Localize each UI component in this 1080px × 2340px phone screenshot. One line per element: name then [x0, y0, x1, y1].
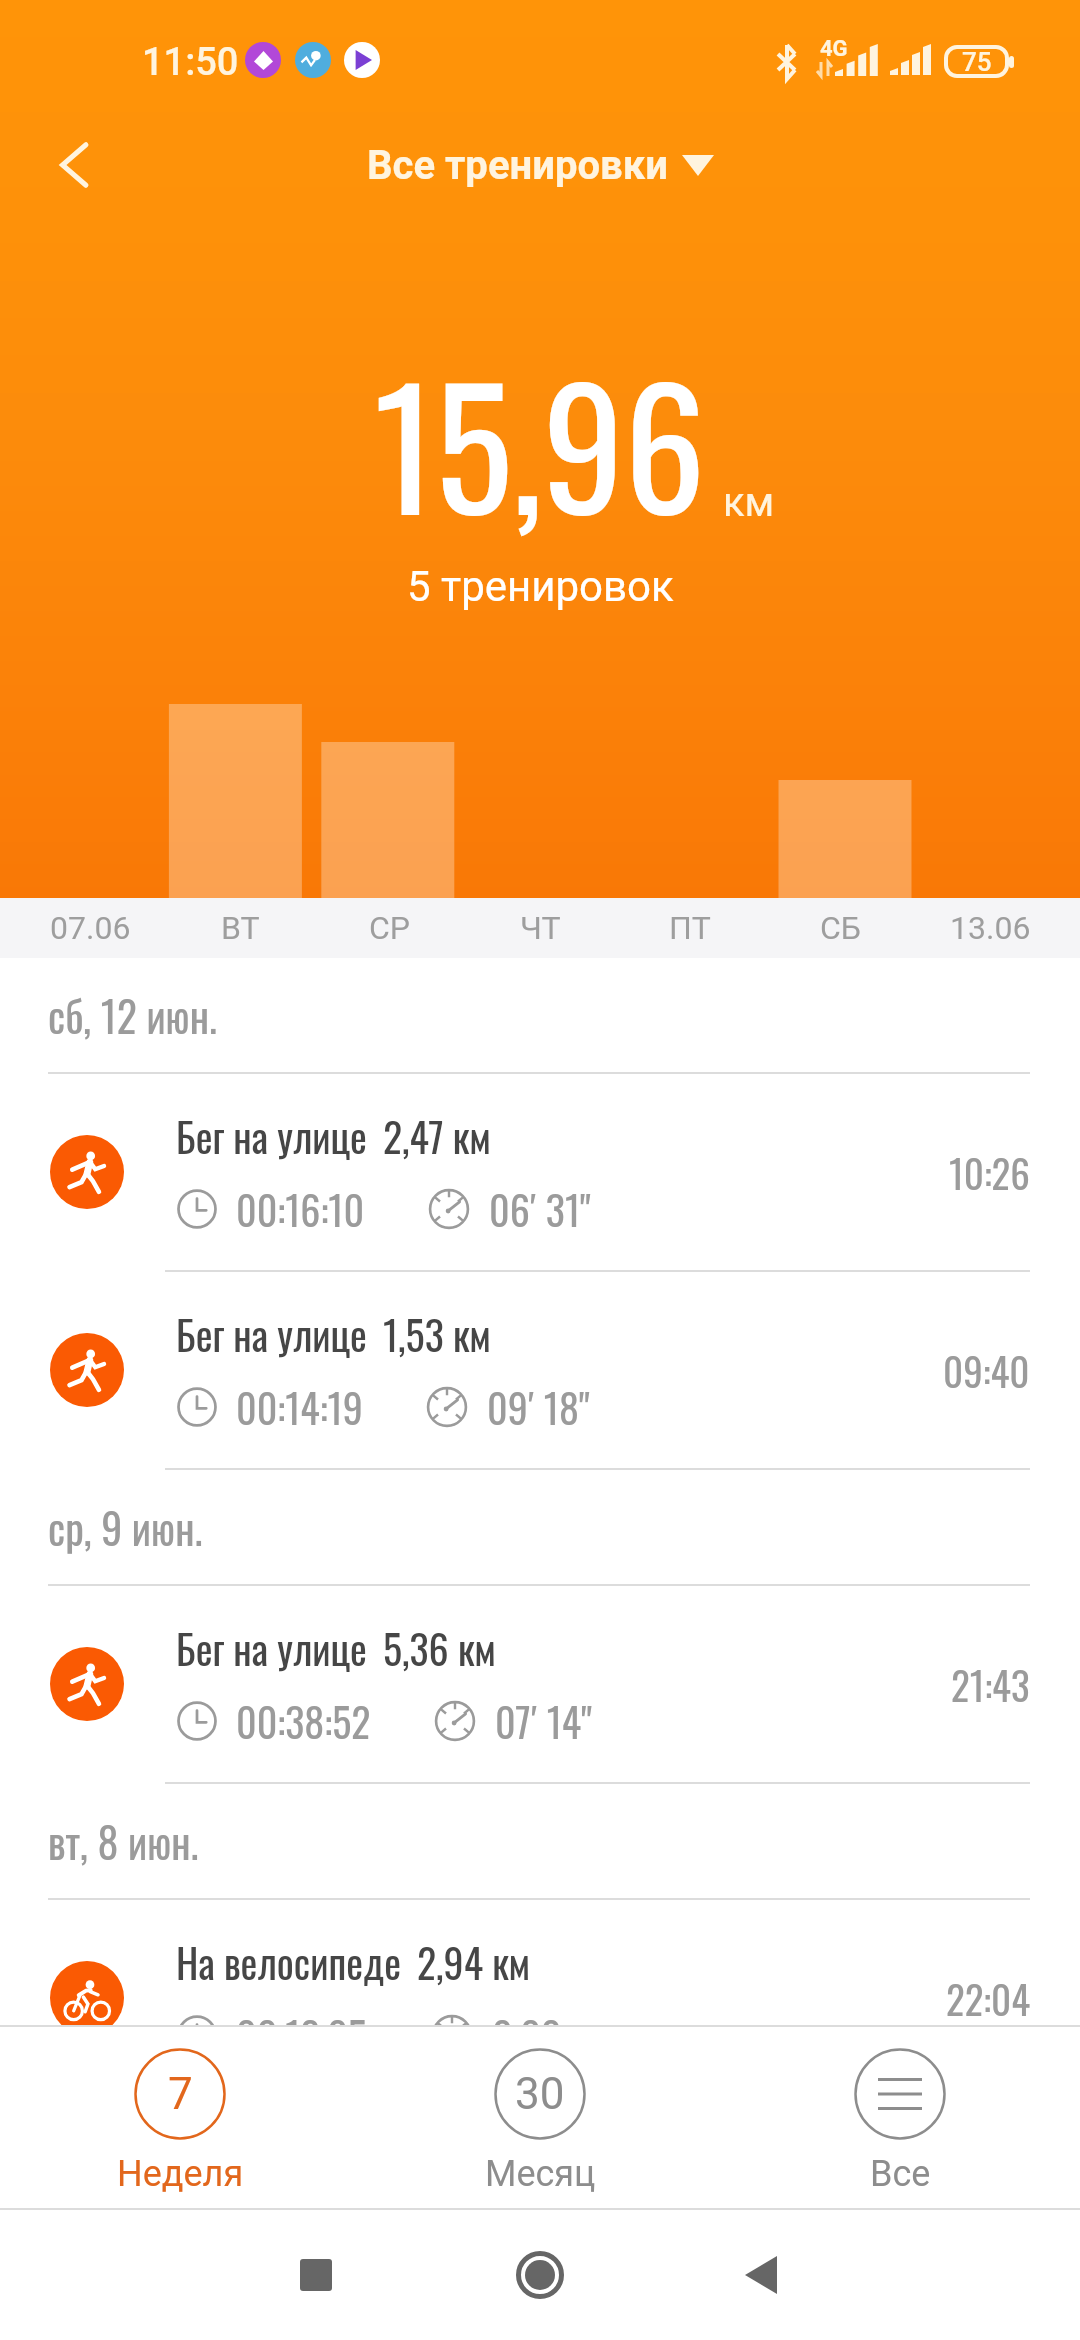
staticText: 2,94 км	[417, 1932, 530, 1991]
staticText: 0,00	[492, 2005, 562, 2064]
staticText: Бег на улице	[176, 1304, 367, 1363]
staticText: 13.06	[950, 909, 1031, 947]
staticText: Бег на улице	[176, 1106, 367, 1165]
button[interactable]: Бег на улице	[0, 1586, 1080, 1784]
staticText: км	[723, 479, 775, 526]
staticText: Все тренировки	[367, 142, 668, 189]
staticText: Бег на улице	[176, 1618, 367, 1677]
button[interactable]: 7	[0, 2027, 360, 2208]
staticText: ЧТ	[520, 909, 561, 947]
staticText: На велосипеде	[176, 1932, 401, 1991]
staticText: вт, 8 июн.	[48, 1810, 199, 1872]
button[interactable]: Бег на улице	[0, 1074, 1080, 1272]
staticText: 2,47 км	[383, 1106, 491, 1165]
staticText: 22:04	[946, 1969, 1030, 2027]
staticText: 09:40	[943, 1341, 1030, 1399]
staticText: ПТ	[669, 909, 711, 947]
staticText: 5,36 км	[383, 1618, 496, 1677]
staticText: Все	[870, 2153, 931, 2195]
staticText: 09′ 18"	[487, 1377, 590, 1436]
staticText: 00:12:05	[236, 2005, 368, 2064]
staticText: 00:14:19	[236, 1377, 363, 1436]
button[interactable]: Back	[34, 125, 114, 205]
staticText: 30	[515, 2068, 565, 2120]
staticText: 7	[168, 2068, 193, 2120]
button[interactable]: Все тренировки	[359, 136, 722, 195]
staticText: СР	[369, 909, 411, 947]
staticText: 21:43	[951, 1655, 1030, 1713]
button[interactable]: На велосипеде	[0, 1900, 1080, 2098]
staticText: 00:16:10	[236, 1179, 365, 1238]
staticText: 4G	[820, 36, 848, 62]
staticText: 07′ 14"	[495, 1691, 592, 1750]
staticText: СБ	[820, 909, 861, 947]
staticText: 00:38:52	[236, 1691, 371, 1750]
staticText: 11:50	[142, 40, 239, 85]
staticText: 1,53 км	[383, 1304, 491, 1363]
button[interactable]: 30	[360, 2027, 720, 2208]
staticText: ср, 9 июн.	[48, 1496, 203, 1558]
staticText: 06′ 31"	[489, 1179, 591, 1238]
staticText: 75	[962, 47, 992, 76]
staticText: 5 тренировок	[407, 562, 674, 611]
staticText: Неделя	[117, 2153, 244, 2195]
staticText: Месяц	[485, 2153, 596, 2195]
button[interactable]: Бег на улице	[0, 1272, 1080, 1470]
staticText: 10:26	[949, 1143, 1030, 1201]
staticText: ВТ	[221, 909, 260, 947]
button[interactable]: Все	[720, 2027, 1080, 2208]
staticText: 15,96	[374, 322, 706, 562]
staticText: сб, 12 июн.	[48, 984, 217, 1046]
staticText: 07.06	[50, 909, 131, 947]
